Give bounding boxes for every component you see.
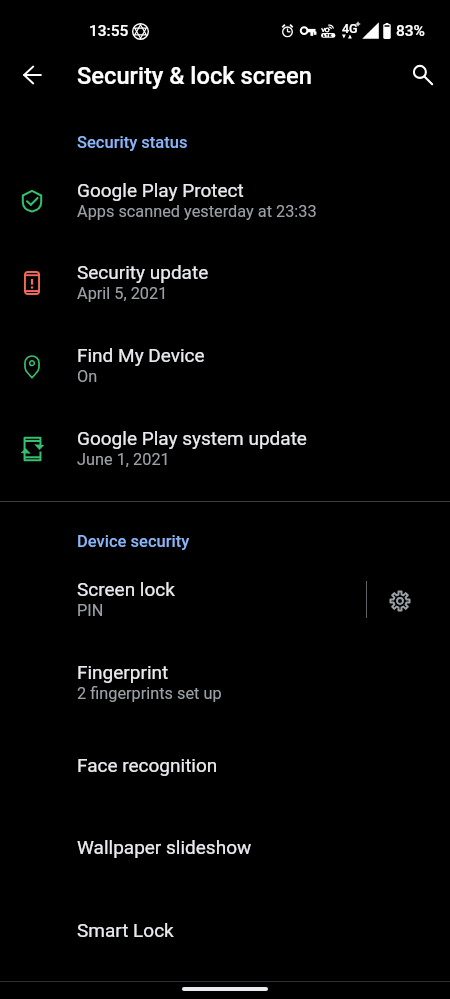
staticText: PIN (77, 601, 104, 620)
staticText: Device security (77, 532, 190, 551)
button[interactable]: Smart Lock (0, 889, 450, 972)
staticText: Find My Device (77, 344, 205, 366)
staticText: 4G (342, 21, 358, 36)
button[interactable]: Search (401, 53, 445, 97)
button[interactable]: Google Play Protect (0, 160, 450, 243)
button[interactable]: Screen lock (0, 559, 366, 642)
staticText: Google Play system update (77, 427, 307, 449)
button[interactable]: Screen lock settings (373, 559, 426, 642)
button[interactable]: Security update (0, 242, 450, 325)
staticText: Fingerprint (77, 661, 169, 683)
staticText: Wallpaper slideshow (77, 836, 252, 858)
staticText: Google Play Protect (77, 179, 244, 201)
staticText: Security update (77, 261, 209, 283)
staticText: Screen lock (77, 578, 175, 600)
button[interactable]: Face recognition (0, 724, 450, 807)
staticText: Face recognition (77, 754, 218, 776)
staticText: June 1, 2021 (77, 450, 170, 469)
staticText: 83% (396, 22, 426, 40)
button[interactable]: Fingerprint (0, 642, 450, 725)
staticText: 13:55 (89, 22, 129, 40)
staticText: On (77, 367, 98, 386)
staticText: Apps scanned yesterday at 23:33 (77, 202, 317, 221)
button[interactable]: Google Play system update (0, 408, 450, 491)
staticText: Security status (77, 133, 188, 152)
staticText: April 5, 2021 (77, 284, 168, 303)
staticText: Security & lock screen (77, 62, 312, 90)
button[interactable]: Wallpaper slideshow (0, 806, 450, 889)
staticText: 2 fingerprints set up (77, 684, 222, 703)
staticText: Smart Lock (77, 919, 174, 941)
button[interactable]: Find My Device (0, 325, 450, 408)
button[interactable]: Navigate up (10, 53, 54, 97)
